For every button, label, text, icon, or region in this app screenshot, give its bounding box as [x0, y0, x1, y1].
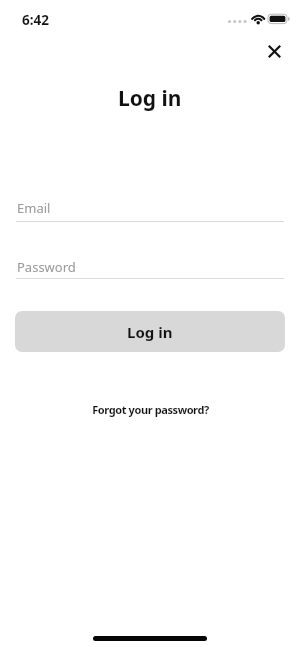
staticText: Log in [118, 84, 182, 113]
button[interactable]: Forgot your password? [92, 402, 209, 417]
staticText: 6:42 [22, 11, 49, 29]
staticText: Log in [127, 322, 173, 342]
staticText: Forgot your password? [92, 402, 209, 417]
staticText: Password [17, 258, 76, 276]
button[interactable] [260, 37, 288, 65]
staticText: Email [17, 199, 51, 217]
button[interactable]: Log in [15, 311, 285, 352]
